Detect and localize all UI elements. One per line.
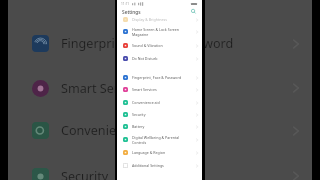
button[interactable]: Digital Wellbeing & Parental Controls <box>117 134 202 145</box>
staticText: Additional Settings <box>132 163 194 168</box>
staticText: Digital Wellbeing & Parental Controls <box>132 135 194 145</box>
button[interactable]: Convenience aid <box>117 98 202 107</box>
button[interactable]: Fingerprint, Face & Password <box>117 73 202 82</box>
staticText: Security <box>61 168 109 180</box>
button[interactable]: Battery <box>117 122 202 131</box>
staticText: Display & Brightness <box>132 17 194 22</box>
button[interactable]: Do Not Disturb <box>117 54 202 63</box>
button[interactable]: Convenience aid <box>16 116 304 144</box>
staticText: Fingerprint, Face & Password <box>132 75 194 80</box>
staticText: Language & Region <box>132 150 194 155</box>
button[interactable]: Display & Brightness <box>117 15 202 24</box>
staticText: Smart Services <box>132 87 194 92</box>
staticText: Settings <box>122 9 141 16</box>
staticText: Home Screen & Lock Screen Magazine <box>132 27 194 37</box>
button[interactable]: Additional Settings <box>117 161 202 170</box>
button[interactable]: Sound & Vibration <box>117 41 202 50</box>
staticText: Smart Services <box>61 80 148 97</box>
staticText: Do Not Disturb <box>132 56 194 61</box>
staticText: Fingerprint, Face & Password <box>61 35 234 52</box>
staticText: Convenience aid <box>132 100 194 105</box>
staticText: Sound & Vibration <box>132 43 194 48</box>
button[interactable]: Smart Services <box>16 74 304 102</box>
button[interactable]: Language & Region <box>117 148 202 157</box>
staticText: 11:11 <box>121 2 130 6</box>
button[interactable]: Security <box>16 162 304 180</box>
staticText: Battery <box>132 124 194 129</box>
button[interactable]: Fingerprint, Face & Password <box>16 29 304 57</box>
staticText: Security <box>132 112 194 117</box>
button[interactable]: Search <box>190 8 197 15</box>
button[interactable]: Security <box>117 110 202 119</box>
button[interactable]: Smart Services <box>117 85 202 94</box>
button[interactable]: Home Screen & Lock Screen Magazine <box>117 26 202 37</box>
staticText: Convenience aid <box>61 122 159 139</box>
